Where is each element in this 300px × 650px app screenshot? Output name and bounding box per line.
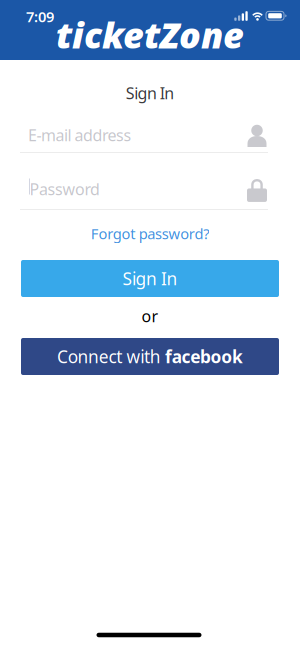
button[interactable]: Sign In xyxy=(21,260,279,297)
staticText: Sign In xyxy=(126,82,174,104)
staticText: Password xyxy=(29,178,100,200)
staticText: E-mail address xyxy=(28,124,131,146)
staticText: ticketZone xyxy=(56,11,244,58)
staticText: Forgot password? xyxy=(91,224,209,243)
staticText: or xyxy=(141,305,158,327)
staticText: Connect with facebook xyxy=(57,345,243,368)
staticText: Sign In xyxy=(122,267,177,290)
button[interactable]: Forgot password? xyxy=(91,224,209,243)
staticText: 7:09 xyxy=(26,7,54,26)
button[interactable]: Connect with facebook xyxy=(21,338,279,375)
